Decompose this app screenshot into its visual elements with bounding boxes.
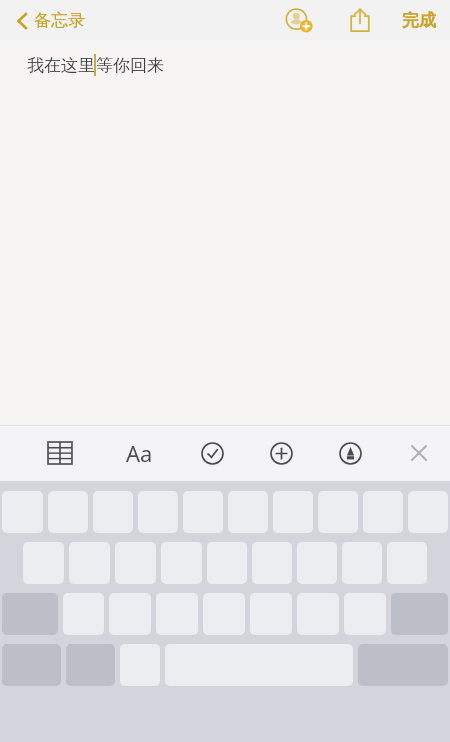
- button[interactable]: Markup: [331, 434, 370, 473]
- staticText: 我在这里: [27, 55, 95, 76]
- button[interactable]: Share: [344, 2, 376, 38]
- staticText: 等你回来: [96, 55, 164, 76]
- staticText: 完成: [402, 10, 436, 31]
- button[interactable]: Checklist: [193, 434, 232, 473]
- button[interactable]: 备忘录: [12, 6, 89, 35]
- button[interactable]: Add attachment: [262, 434, 301, 473]
- button[interactable]: 完成: [398, 6, 440, 35]
- staticText: 备忘录: [34, 10, 85, 31]
- button[interactable]: Table: [40, 434, 80, 472]
- button[interactable]: Add people: [280, 2, 318, 38]
- staticText: Aa: [126, 438, 153, 468]
- button[interactable]: Aa: [118, 430, 161, 476]
- button[interactable]: Close: [400, 434, 438, 472]
